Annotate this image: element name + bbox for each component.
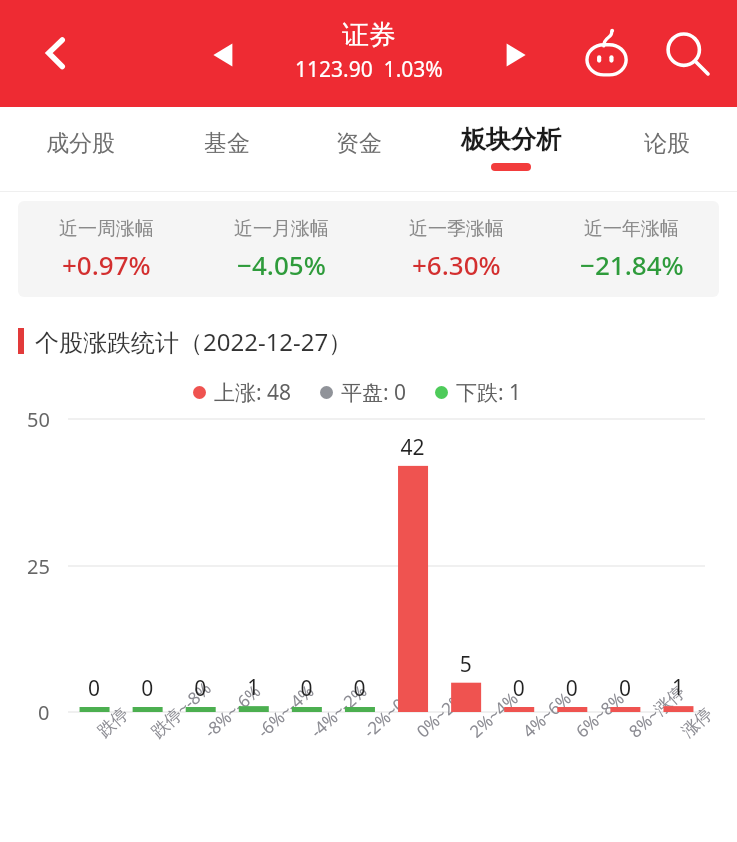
staticText: 近一周涨幅 (59, 217, 154, 241)
button[interactable]: 近一周涨幅 (18, 201, 194, 297)
button[interactable]: 基金 (161, 107, 293, 187)
staticText: 上涨: 48 (214, 378, 292, 407)
button[interactable]: 资金 (293, 107, 425, 187)
button[interactable]: Next (496, 38, 534, 72)
button[interactable]: 近一月涨幅 (194, 201, 369, 297)
staticText: +0.97% (62, 247, 151, 282)
button[interactable]: 下跌: 1 (435, 378, 522, 407)
staticText: 1123.90 1.03% (295, 55, 443, 84)
staticText: −4.05% (237, 247, 326, 282)
button[interactable]: 证券 (295, 18, 443, 84)
staticText: +6.30% (412, 247, 501, 282)
button[interactable]: 论股 (597, 107, 737, 187)
staticText: 论股 (644, 129, 690, 158)
staticText: 成分股 (46, 129, 115, 158)
staticText: 基金 (204, 129, 250, 158)
button[interactable]: 近一年涨幅 (544, 201, 719, 297)
button[interactable]: 成分股 (0, 107, 161, 187)
staticText: 下跌: 1 (456, 378, 522, 407)
button[interactable]: Previous (205, 38, 243, 72)
staticText: 近一季涨幅 (409, 217, 504, 241)
staticText: −21.84% (580, 247, 684, 282)
button[interactable]: Search (660, 27, 714, 81)
button[interactable]: 平盘: 0 (320, 378, 407, 407)
staticText: 近一年涨幅 (584, 217, 679, 241)
staticText: 证券 (342, 18, 396, 52)
staticText: 平盘: 0 (341, 378, 407, 407)
button[interactable]: 板块分析 (425, 107, 597, 187)
staticText: 个股涨跌统计（2022-12-27） (35, 325, 353, 358)
staticText: 资金 (336, 129, 382, 158)
button[interactable]: Assistant (578, 25, 634, 83)
button[interactable]: 近一季涨幅 (369, 201, 544, 297)
staticText: 近一月涨幅 (234, 217, 329, 241)
button[interactable]: 上涨: 48 (193, 378, 292, 407)
button[interactable]: Back (30, 27, 82, 79)
staticText: 板块分析 (461, 124, 561, 155)
